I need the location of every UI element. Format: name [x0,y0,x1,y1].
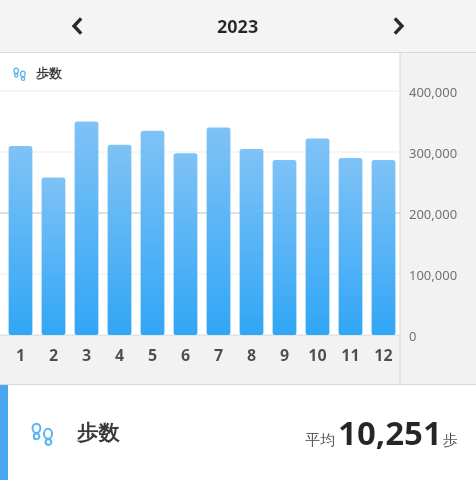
staticText: 8 [235,344,268,366]
staticText: 歩数 [36,65,62,81]
staticText: 100,000 [409,266,458,284]
staticText: 1 [4,344,37,366]
staticText: 3 [70,344,103,366]
staticText: 300,000 [409,144,458,162]
staticText: 9 [268,344,301,366]
staticText: 歩 [443,431,458,450]
staticText: 10,251 [338,410,442,455]
button[interactable]: 歩数 [0,52,476,385]
staticText: 2023 [217,14,259,39]
staticText: 2 [37,344,70,366]
staticText: 4 [103,344,136,366]
staticText: 12 [367,344,400,366]
staticText: 400,000 [409,83,458,101]
staticText: 0 [409,327,417,345]
button[interactable]: Previous year [58,6,98,46]
button[interactable]: 歩数 [0,385,476,480]
button[interactable]: 2023 [217,14,259,39]
button[interactable]: Next year [378,6,418,46]
staticText: 歩数 [77,420,119,446]
staticText: 5 [136,344,169,366]
staticText: 平均 [305,431,335,450]
staticText: 10 [301,344,334,366]
staticText: 7 [202,344,235,366]
staticText: 6 [169,344,202,366]
staticText: 200,000 [409,205,458,223]
staticText: 11 [334,344,367,366]
